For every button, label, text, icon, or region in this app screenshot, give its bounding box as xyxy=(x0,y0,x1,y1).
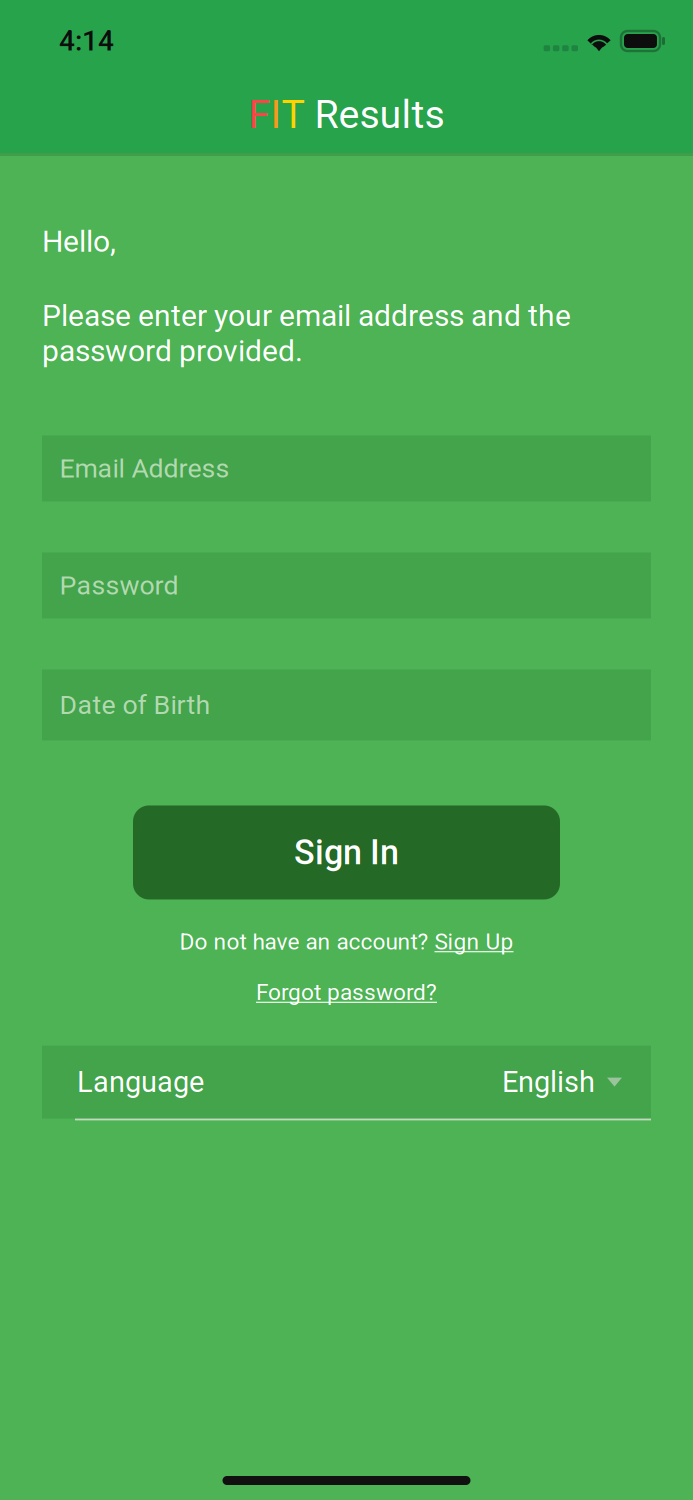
button[interactable]: Forgot password? xyxy=(256,979,437,1006)
staticText: Password xyxy=(59,570,178,601)
staticText: Hello, xyxy=(42,224,116,259)
staticText: F xyxy=(248,91,270,138)
staticText: Sign In xyxy=(294,832,399,872)
button[interactable]: Password xyxy=(42,552,651,618)
staticText: Email Address xyxy=(59,453,229,484)
staticText: English xyxy=(502,1065,595,1099)
staticText: I xyxy=(270,91,281,138)
staticText: Do not have an account? xyxy=(179,928,434,955)
button[interactable]: Email Address xyxy=(42,435,651,501)
staticText: Results xyxy=(304,91,444,138)
staticText: Language xyxy=(77,1065,204,1099)
button[interactable]: Date of Birth xyxy=(42,669,651,740)
button[interactable]: Sign Up xyxy=(434,928,513,955)
button[interactable]: Sign In xyxy=(133,805,560,899)
button[interactable]: Language xyxy=(42,1046,651,1120)
staticText: Forgot password? xyxy=(256,979,437,1006)
staticText: Date of Birth xyxy=(59,689,210,721)
staticText: Sign Up xyxy=(434,928,513,955)
staticText: T xyxy=(281,91,304,138)
staticText: 4:14 xyxy=(59,25,114,57)
staticText: Please enter your email address and the … xyxy=(42,298,571,368)
